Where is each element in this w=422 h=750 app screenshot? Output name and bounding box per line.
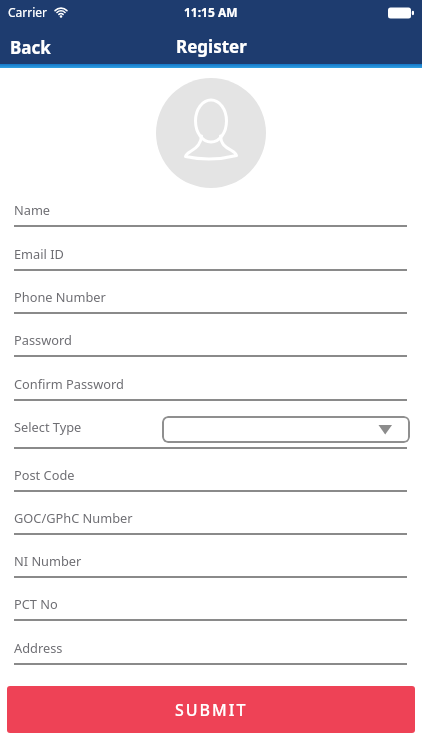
staticText: Password	[14, 331, 72, 348]
button[interactable]: Confirm Password	[14, 372, 407, 401]
button[interactable]	[162, 416, 410, 443]
button[interactable]: Password	[14, 328, 407, 357]
button[interactable]: Post Code	[14, 463, 407, 492]
staticText: NI Number	[14, 552, 82, 569]
button[interactable]: SUBMIT	[7, 686, 415, 733]
button[interactable]: Phone Number	[14, 285, 407, 314]
button[interactable]: Select Type	[14, 415, 407, 449]
staticText: Confirm Password	[14, 375, 124, 392]
staticText: 11:15 AM	[184, 4, 238, 20]
staticText: Address	[14, 639, 63, 656]
staticText: PCT No	[14, 595, 58, 612]
button[interactable]: NI Number	[14, 549, 407, 578]
staticText: Back	[10, 36, 51, 59]
staticText: Phone Number	[14, 288, 106, 305]
button[interactable]: PCT No	[14, 592, 407, 621]
button[interactable]: Address	[14, 636, 407, 665]
staticText: Select Type	[14, 418, 82, 435]
staticText: Email ID	[14, 245, 64, 262]
staticText: Name	[14, 201, 51, 218]
staticText: SUBMIT	[175, 699, 248, 721]
staticText: Post Code	[14, 466, 75, 483]
button[interactable]: Back	[4, 30, 57, 65]
button[interactable]: GOC/GPhC Number	[14, 506, 407, 535]
staticText: Register	[176, 35, 247, 58]
staticText: Carrier	[8, 4, 48, 20]
staticText: GOC/GPhC Number	[14, 509, 133, 526]
button[interactable]: Email ID	[14, 242, 407, 271]
button[interactable]: Name	[14, 198, 407, 227]
